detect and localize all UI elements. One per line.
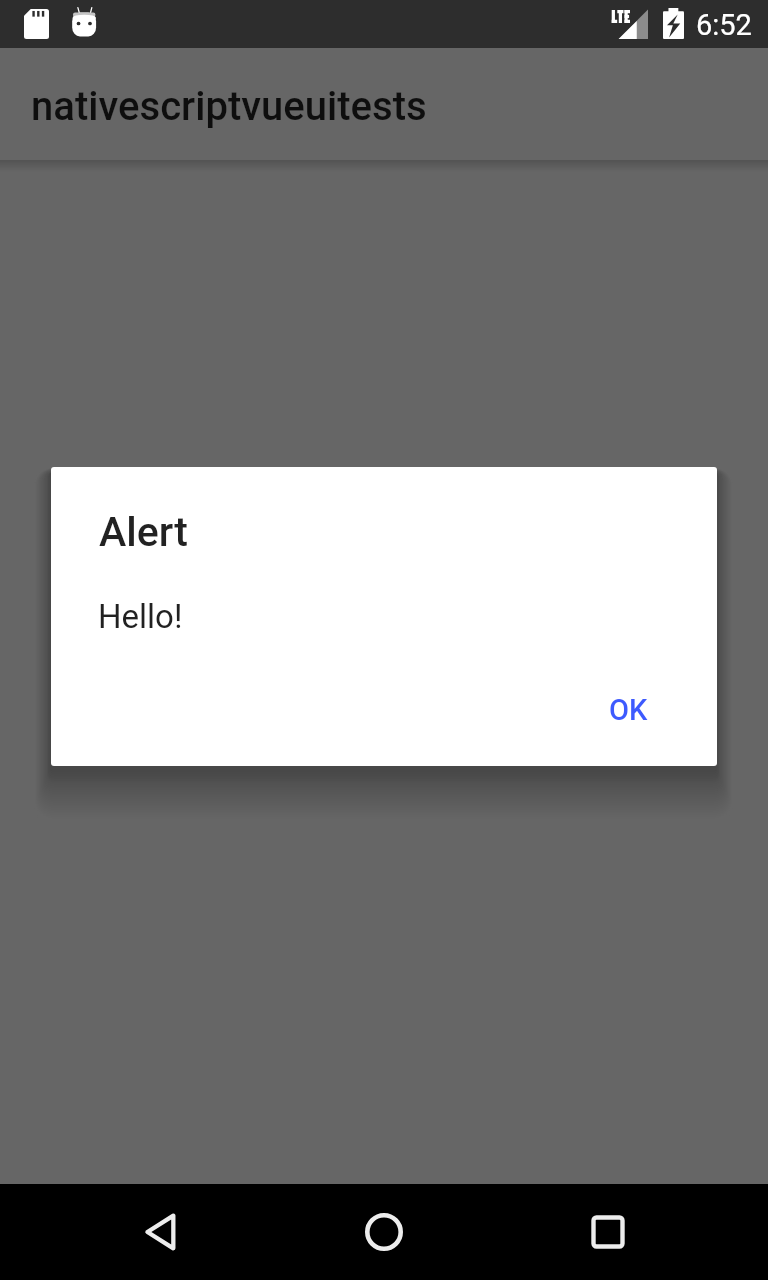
button[interactable]: Dismiss dialog <box>0 160 768 1184</box>
staticText: Hello! <box>98 597 183 636</box>
button[interactable]: Back <box>112 1184 208 1280</box>
button[interactable]: Home <box>336 1184 432 1280</box>
staticText: Alert <box>99 508 188 556</box>
staticText: 6:52 <box>696 8 752 42</box>
staticText: OK <box>609 693 648 727</box>
button[interactable]: OK <box>590 679 666 741</box>
other: LTE <box>611 10 630 23</box>
staticText: nativescriptvueuitests <box>31 83 427 130</box>
button[interactable]: Recent apps <box>560 1184 656 1280</box>
other: Android <box>71 7 97 37</box>
